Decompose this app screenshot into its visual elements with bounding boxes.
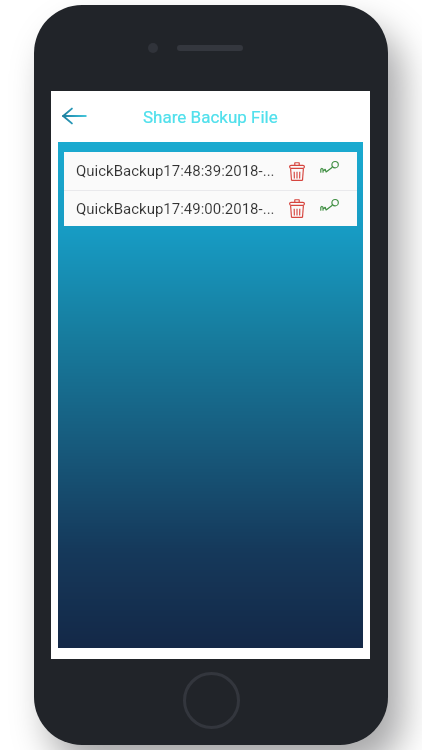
button[interactable]: Share backup <box>312 191 343 226</box>
staticText: QuickBackup17:48:39:2018-... <box>76 162 281 180</box>
staticText: Share Backup File <box>143 107 278 127</box>
button[interactable]: Delete backup <box>281 191 312 226</box>
button[interactable]: Share backup <box>312 152 343 190</box>
button[interactable]: QuickBackup17:48:39:2018-... <box>64 152 357 190</box>
staticText: QuickBackup17:49:00:2018-... <box>76 200 281 218</box>
button[interactable]: QuickBackup17:49:00:2018-... <box>64 191 357 226</box>
button[interactable]: Back <box>52 95 96 139</box>
button[interactable]: Delete backup <box>281 152 312 190</box>
